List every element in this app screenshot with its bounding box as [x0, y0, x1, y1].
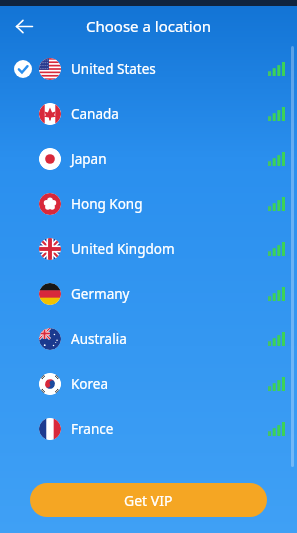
staticText: United States	[71, 60, 156, 78]
button[interactable]: Japan	[0, 136, 297, 181]
staticText: Australia	[71, 330, 127, 348]
staticText: Japan	[71, 150, 107, 168]
staticText: United Kingdom	[71, 240, 175, 258]
button[interactable]: Germany	[0, 271, 297, 316]
staticText: Korea	[71, 375, 109, 393]
staticText: France	[71, 420, 114, 438]
button[interactable]: Hong Kong	[0, 181, 297, 226]
button[interactable]: United Kingdom	[0, 226, 297, 271]
staticText: Canada	[71, 105, 119, 123]
button[interactable]: United States	[0, 46, 297, 91]
button[interactable]: Get VIP	[30, 483, 267, 517]
button[interactable]: Canada	[0, 91, 297, 136]
button[interactable]: France	[0, 406, 297, 451]
staticText: Choose a location	[86, 16, 211, 36]
button[interactable]: Back	[6, 8, 42, 44]
button[interactable]: Australia	[0, 316, 297, 361]
button[interactable]: Korea	[0, 361, 297, 406]
staticText: Get VIP	[124, 491, 173, 510]
staticText: Hong Kong	[71, 195, 143, 213]
staticText: Germany	[71, 285, 130, 303]
